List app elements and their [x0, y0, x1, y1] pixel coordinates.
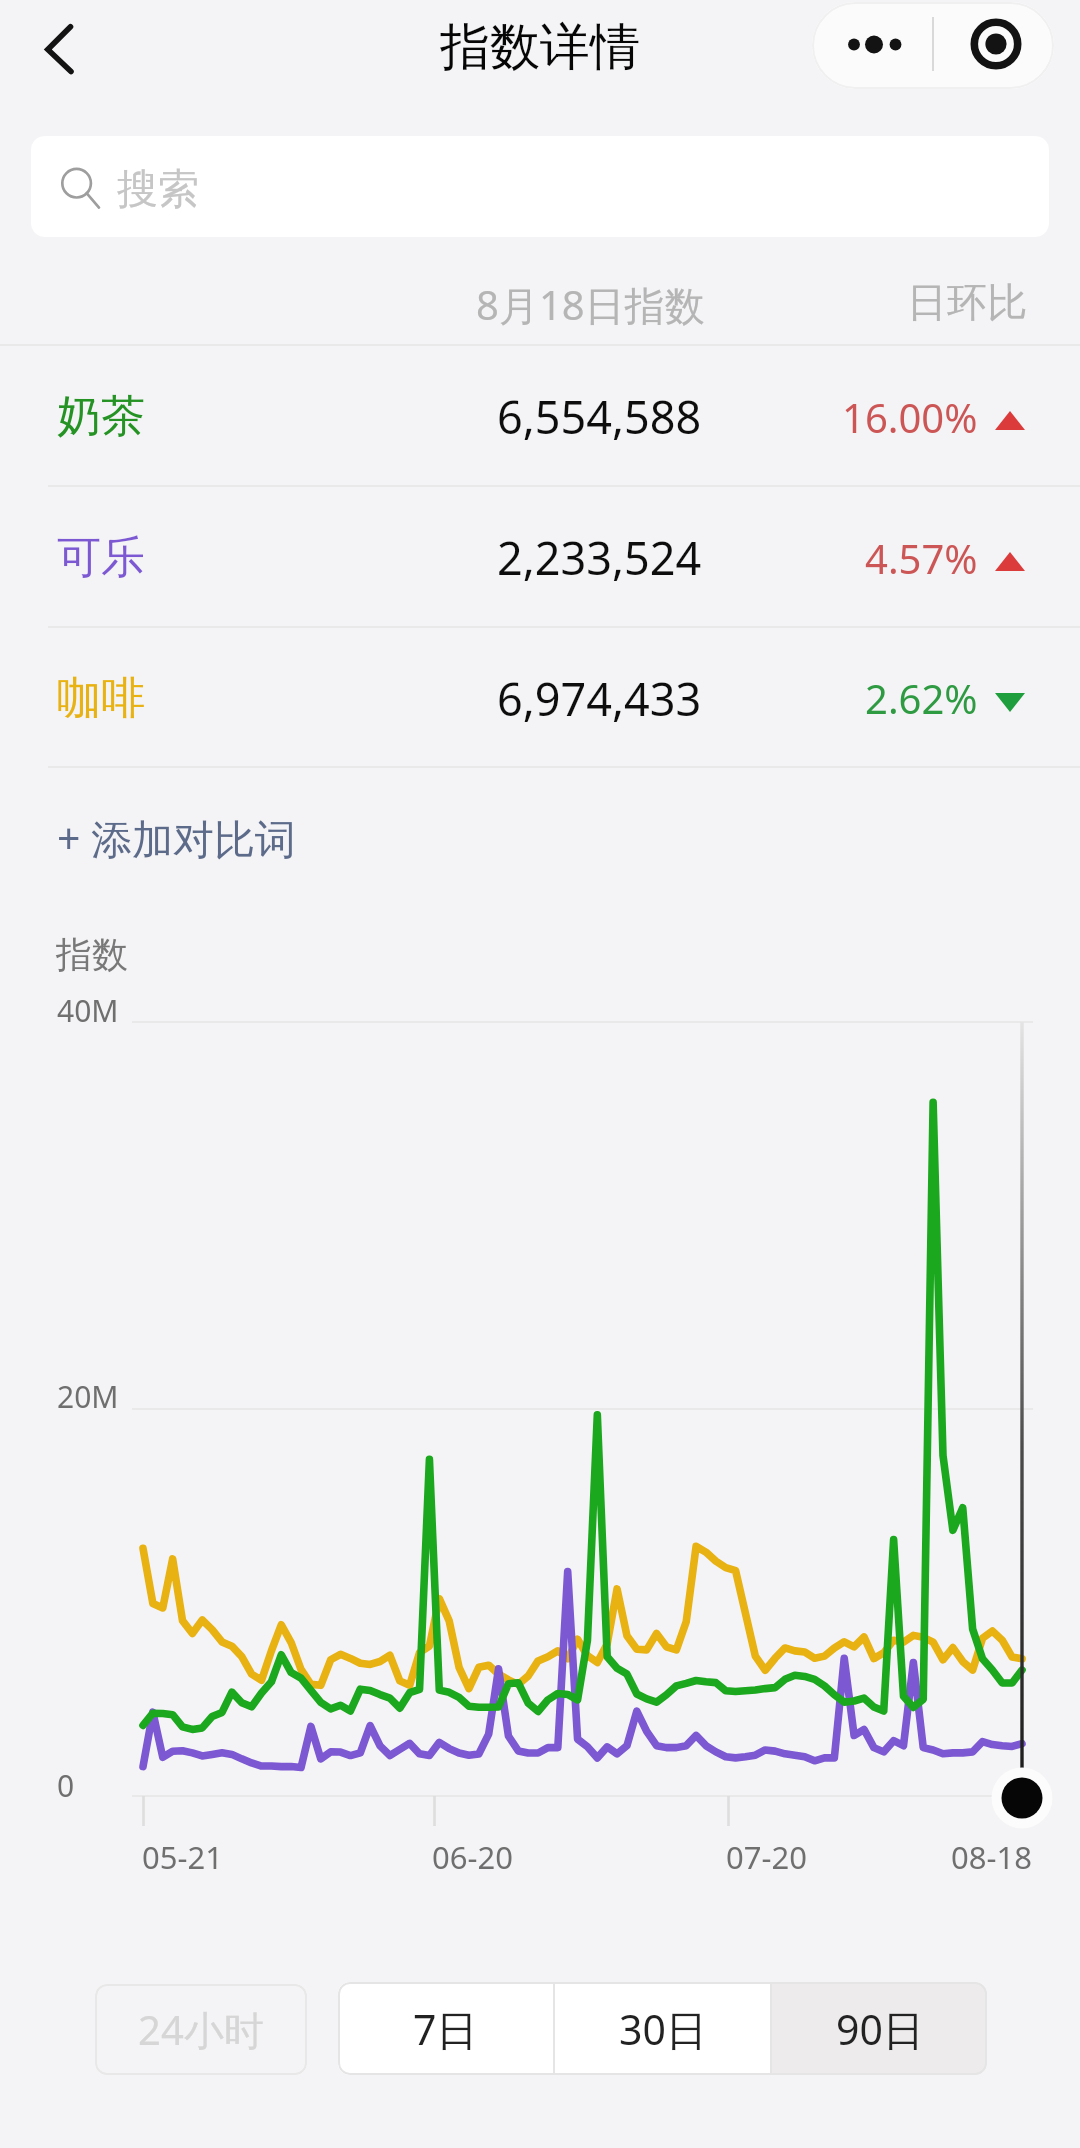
staticText: 8月18日指数 — [476, 277, 705, 332]
staticText: 06-20 — [432, 1836, 513, 1878]
staticText: 90日 — [836, 2001, 924, 2057]
staticText: + 添加对比词 — [57, 810, 297, 866]
staticText: 6,554,588 — [497, 386, 702, 447]
staticText: 30日 — [619, 2001, 707, 2057]
staticText: 2.62% — [865, 671, 978, 725]
button[interactable]: 可乐 — [0, 487, 1080, 628]
staticText: 0 — [57, 1765, 75, 1806]
staticText: 可乐 — [57, 530, 145, 585]
button[interactable]: Close mini program — [934, 2, 1054, 89]
button[interactable]: 咖啡 — [0, 628, 1080, 768]
staticText: 2,233,524 — [497, 527, 702, 588]
staticText: 20M — [57, 1376, 119, 1417]
button[interactable]: 24小时 — [95, 1984, 307, 2075]
staticText: 16.00% — [842, 390, 978, 444]
button[interactable]: 90日 — [772, 1982, 987, 2075]
staticText: 咖啡 — [57, 671, 145, 726]
staticText: 7日 — [413, 2001, 478, 2057]
button[interactable]: 奶茶 — [0, 346, 1080, 487]
staticText: 08-18 — [951, 1836, 1032, 1878]
staticText: 指数详情 — [440, 16, 640, 79]
staticText: 05-21 — [142, 1836, 223, 1878]
button[interactable]: Search — [31, 136, 1049, 237]
staticText: 奶茶 — [57, 389, 145, 444]
staticText: 40M — [57, 990, 119, 1031]
button[interactable]: Back — [14, 6, 100, 94]
staticText: 6,974,433 — [497, 668, 702, 729]
button[interactable]: + 添加对比词 — [57, 797, 297, 879]
staticText: 24小时 — [138, 2002, 264, 2057]
staticText: 4.57% — [865, 531, 978, 585]
staticText: 日环比 — [907, 277, 1027, 327]
staticText: 搜索 — [117, 164, 199, 216]
button[interactable]: 7日 — [338, 1982, 553, 2075]
button[interactable]: More options — [812, 2, 933, 89]
staticText: 指数 — [56, 932, 128, 977]
button[interactable]: 30日 — [555, 1982, 770, 2075]
staticText: 07-20 — [726, 1836, 807, 1878]
